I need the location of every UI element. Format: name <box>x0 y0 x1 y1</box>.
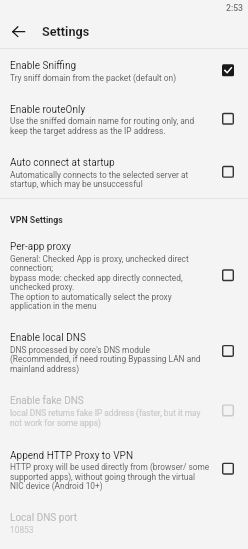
staticText: supported apps), without going through t… <box>10 472 196 482</box>
staticText: Automatically connects to the selected s… <box>10 169 189 179</box>
staticText: not work for some apps) <box>10 418 101 428</box>
staticText: Settings <box>42 24 90 39</box>
staticText: Enable local DNS <box>10 332 86 344</box>
staticText: HTTP proxy will be used directly from (b… <box>10 462 210 472</box>
button[interactable]: Append HTTP Proxy to VPN <box>0 440 248 502</box>
button[interactable]: Local DNS port <box>0 502 248 545</box>
button[interactable]: Enable Sniffing <box>0 50 248 93</box>
staticText: Auto connect at startup <box>10 157 115 169</box>
staticText: Local DNS port <box>10 512 78 524</box>
staticText: VPN Settings <box>10 214 63 224</box>
button[interactable]: Enable local DNS <box>0 322 248 384</box>
staticText: NIC device (Android 10+) <box>10 481 103 491</box>
staticText: Enable fake DNS <box>10 395 84 407</box>
staticText: The option to automatically select the p… <box>10 292 172 302</box>
staticText: (Recommended, if need routing Bypassing … <box>10 354 201 364</box>
staticText: 10853 <box>10 524 34 534</box>
button[interactable]: Enable routeOnly <box>0 94 248 147</box>
staticText: DNS processed by core's DNS module <box>10 345 150 355</box>
staticText: startup, which may be unsuccessful <box>10 179 143 189</box>
staticText: General: Checked App is proxy, unchecked… <box>10 254 189 264</box>
staticText: Enable routeOnly <box>10 104 86 116</box>
staticText: Enable Sniffing <box>10 60 77 72</box>
staticText: local DNS returns fake IP address (faste… <box>10 408 201 418</box>
button[interactable]: Auto connect at startup <box>0 147 248 200</box>
button[interactable]: Per-app proxy <box>0 231 248 322</box>
staticText: unchecked proxy. <box>10 282 75 292</box>
staticText: connection; <box>10 263 54 273</box>
staticText: Use the sniffed domain name for routing … <box>10 116 195 126</box>
staticText: Per-app proxy <box>10 241 72 253</box>
staticText: Append HTTP Proxy to VPN <box>10 450 134 462</box>
staticText: bypass mode: checked app directly connec… <box>10 273 183 283</box>
button[interactable]: Enable fake DNS <box>0 385 248 438</box>
staticText: mainland address) <box>10 364 80 374</box>
button[interactable]: Back <box>0 15 37 47</box>
staticText: keep the target address as the IP addres… <box>10 126 166 136</box>
staticText: Try sniff domain from the packet (defaul… <box>10 73 177 83</box>
staticText: 2:53 <box>226 3 243 13</box>
staticText: application in the menu <box>10 301 97 311</box>
